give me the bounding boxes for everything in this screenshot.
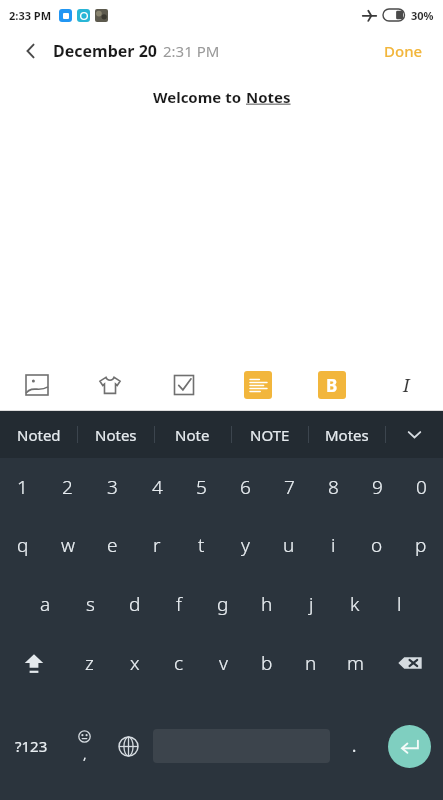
button[interactable]: m — [333, 633, 377, 692]
staticText: 30% — [411, 8, 434, 23]
button[interactable]: i — [311, 515, 355, 574]
button[interactable]: b — [245, 633, 289, 692]
button[interactable]: t — [179, 515, 223, 574]
button[interactable]: e — [90, 515, 135, 574]
staticText: o — [371, 532, 383, 558]
button[interactable]: 6 — [223, 458, 267, 515]
staticText: Notes — [246, 87, 291, 107]
button[interactable]: u — [267, 515, 311, 574]
staticText: p — [415, 532, 427, 558]
staticText: q — [17, 532, 29, 558]
button[interactable]: z — [67, 633, 112, 692]
button[interactable]: Bold — [295, 359, 369, 411]
button[interactable]: Change language — [106, 692, 150, 800]
button[interactable]: ?123 — [0, 692, 62, 800]
button[interactable]: 9 — [355, 458, 399, 515]
button[interactable]: s — [68, 574, 113, 633]
staticText: l — [397, 591, 402, 617]
button[interactable]: 1 — [0, 458, 45, 515]
staticText: e — [107, 532, 118, 558]
button[interactable]: Enter — [376, 692, 443, 800]
button[interactable]: Checklist — [147, 359, 221, 411]
button[interactable]: n — [289, 633, 333, 692]
staticText: c — [174, 650, 184, 676]
button[interactable]: Back — [16, 36, 46, 66]
button[interactable]: a — [23, 574, 68, 633]
staticText: g — [217, 591, 229, 617]
button[interactable]: Notes — [77, 411, 154, 458]
button[interactable]: v — [201, 633, 245, 692]
staticText: Done — [384, 41, 423, 61]
staticText: j — [309, 591, 314, 617]
staticText: n — [305, 650, 317, 676]
button[interactable]: Text format — [221, 359, 295, 411]
button[interactable]: d — [113, 574, 157, 633]
staticText: t — [198, 532, 205, 558]
staticText: f — [176, 591, 182, 617]
button[interactable]: f — [157, 574, 201, 633]
staticText: u — [283, 532, 295, 558]
button[interactable]: k — [333, 574, 377, 633]
button[interactable]: l — [377, 574, 421, 633]
button[interactable]: More suggestions — [385, 411, 443, 458]
button[interactable]: . — [332, 692, 376, 800]
button[interactable]: Shift — [0, 633, 67, 692]
button[interactable]: NOTE — [231, 411, 308, 458]
button[interactable]: Motes — [308, 411, 385, 458]
button[interactable]: p — [399, 515, 443, 574]
staticText: Motes — [325, 425, 369, 445]
staticText: Notes — [95, 425, 137, 445]
staticText: r — [153, 532, 161, 558]
button[interactable]: Noted — [0, 411, 77, 458]
staticText: 3 — [107, 474, 118, 500]
staticText: 7 — [284, 474, 295, 500]
staticText: ?123 — [15, 736, 48, 756]
button[interactable]: j — [289, 574, 333, 633]
button[interactable]: Insert image — [0, 359, 73, 411]
button[interactable]: 0 — [399, 458, 443, 515]
button[interactable]: 7 — [267, 458, 311, 515]
staticText: 5 — [196, 474, 207, 500]
button[interactable]: 3 — [90, 458, 135, 515]
button[interactable]: y — [223, 515, 267, 574]
button[interactable]: Done — [380, 37, 427, 65]
staticText: h — [261, 591, 273, 617]
button[interactable]: Note — [154, 411, 231, 458]
staticText: x — [130, 650, 140, 676]
button[interactable]: 4 — [135, 458, 179, 515]
button[interactable]: 2 — [45, 458, 90, 515]
staticText: I — [403, 373, 410, 398]
button[interactable]: c — [157, 633, 201, 692]
button[interactable]: w — [45, 515, 90, 574]
button[interactable]: q — [0, 515, 45, 574]
staticText: 2 — [62, 474, 73, 500]
button[interactable]: x — [112, 633, 157, 692]
button[interactable]: Sticker — [73, 359, 147, 411]
button[interactable]: o — [355, 515, 399, 574]
button[interactable]: r — [135, 515, 179, 574]
button[interactable]: g — [201, 574, 245, 633]
button[interactable]: Space — [150, 692, 332, 800]
staticText: s — [86, 591, 95, 617]
staticText: w — [61, 532, 75, 558]
staticText: k — [350, 591, 360, 617]
staticText: 2:33 PM — [9, 8, 52, 23]
staticText: z — [85, 650, 94, 676]
staticText: d — [129, 591, 141, 617]
staticText: i — [331, 532, 336, 558]
staticText: B — [326, 374, 338, 397]
staticText: 9 — [372, 474, 383, 500]
button[interactable]: 8 — [311, 458, 355, 515]
button[interactable]: Backspace — [377, 633, 443, 692]
staticText: December 20 — [53, 40, 157, 62]
staticText: 8 — [328, 474, 339, 500]
button[interactable]: 5 — [179, 458, 223, 515]
button[interactable]: h — [245, 574, 289, 633]
staticText: Note — [175, 425, 210, 445]
button[interactable]: Emoji — [62, 692, 106, 800]
staticText: b — [261, 650, 273, 676]
staticText: NOTE — [250, 425, 290, 445]
staticText: 6 — [240, 474, 251, 500]
button[interactable]: Italic — [369, 359, 443, 411]
staticText: Noted — [17, 425, 61, 445]
